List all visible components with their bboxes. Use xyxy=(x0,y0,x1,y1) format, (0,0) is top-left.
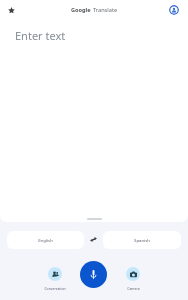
staticText: Camera xyxy=(127,286,140,291)
button[interactable]: Saved xyxy=(5,4,17,16)
staticText: Spanish xyxy=(134,237,150,243)
button[interactable]: Camera xyxy=(113,261,153,291)
staticText: Translate xyxy=(93,6,118,14)
button[interactable]: Account xyxy=(169,5,179,15)
button[interactable]: Conversation xyxy=(35,261,75,291)
staticText: Conversation xyxy=(44,286,66,291)
button[interactable]: Spanish xyxy=(103,231,181,249)
staticText: Google xyxy=(71,6,91,14)
button[interactable]: Swap languages xyxy=(84,231,103,249)
button[interactable]: English xyxy=(7,231,84,249)
staticText: Enter text xyxy=(15,28,66,43)
staticText: English xyxy=(38,237,53,243)
button[interactable]: Speak xyxy=(80,261,107,288)
